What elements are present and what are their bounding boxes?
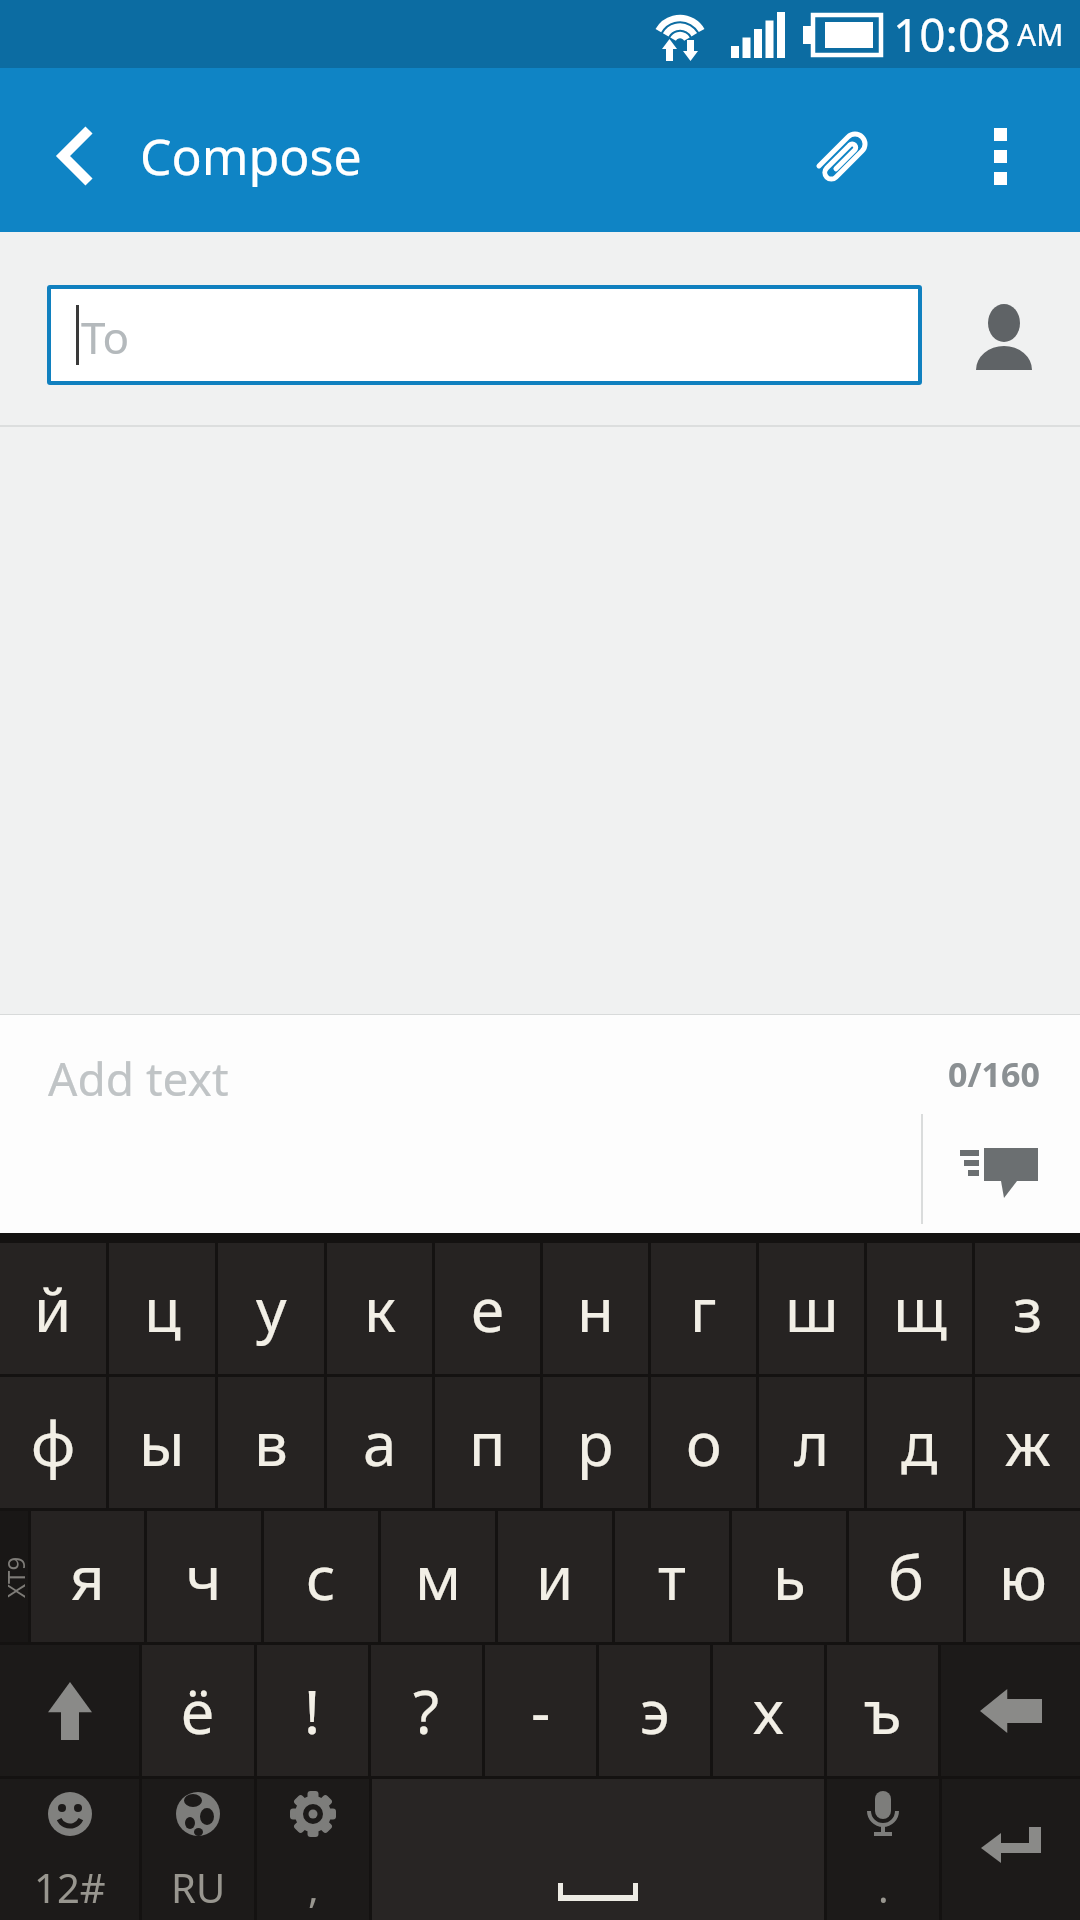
staticText: а: [363, 1402, 397, 1484]
staticText: п: [469, 1402, 506, 1484]
button[interactable]: р: [543, 1377, 648, 1508]
button[interactable]: To: [47, 285, 922, 385]
staticText: б: [888, 1536, 924, 1618]
button[interactable]: о: [651, 1377, 756, 1508]
staticText: To: [81, 307, 130, 367]
staticText: э: [640, 1670, 670, 1752]
staticText: н: [577, 1268, 614, 1350]
button[interactable]: [788, 101, 898, 211]
button[interactable]: ш: [759, 1243, 864, 1374]
button[interactable]: [960, 101, 1040, 211]
button[interactable]: э: [599, 1645, 710, 1776]
staticText: й: [34, 1268, 72, 1350]
button[interactable]: ю: [966, 1511, 1080, 1642]
staticText: ш: [785, 1268, 839, 1350]
button[interactable]: ъ: [827, 1645, 938, 1776]
staticText: г: [690, 1268, 717, 1350]
button[interactable]: у: [218, 1243, 324, 1374]
button[interactable]: а: [327, 1377, 432, 1508]
button[interactable]: 12#: [0, 1779, 139, 1920]
button[interactable]: ц: [109, 1243, 215, 1374]
button[interactable]: .: [827, 1779, 939, 1920]
staticText: т: [658, 1536, 686, 1618]
button[interactable]: т: [615, 1511, 729, 1642]
button[interactable]: ы: [109, 1377, 215, 1508]
staticText: м: [415, 1536, 462, 1618]
staticText: в: [254, 1402, 288, 1484]
staticText: !: [304, 1670, 321, 1752]
staticText: о: [686, 1402, 722, 1484]
staticText: и: [536, 1536, 574, 1618]
button[interactable]: -: [485, 1645, 596, 1776]
staticText: ц: [144, 1268, 181, 1350]
button[interactable]: ,: [257, 1779, 369, 1920]
staticText: з: [1013, 1268, 1043, 1350]
staticText: у: [256, 1268, 287, 1350]
staticText: Add text: [48, 1047, 229, 1110]
button[interactable]: з: [975, 1243, 1080, 1374]
button[interactable]: и: [498, 1511, 612, 1642]
button[interactable]: ё: [142, 1645, 254, 1776]
staticText: с: [306, 1536, 336, 1618]
staticText: д: [901, 1402, 938, 1484]
staticText: щ: [893, 1268, 947, 1350]
staticText: ъ: [864, 1670, 902, 1752]
staticText: ч: [186, 1536, 222, 1618]
button[interactable]: б: [849, 1511, 963, 1642]
button[interactable]: я: [31, 1511, 144, 1642]
button[interactable]: !: [257, 1645, 368, 1776]
staticText: RU: [171, 1860, 226, 1914]
button[interactable]: [30, 101, 120, 211]
button[interactable]: [942, 1779, 1080, 1920]
staticText: я: [70, 1536, 105, 1618]
button[interactable]: [941, 1645, 1080, 1776]
staticText: ё: [181, 1670, 215, 1752]
button[interactable]: ч: [147, 1511, 261, 1642]
button[interactable]: ь: [732, 1511, 846, 1642]
button[interactable]: ?: [371, 1645, 482, 1776]
staticText: ю: [999, 1536, 1047, 1618]
button[interactable]: RU: [142, 1779, 254, 1920]
staticText: ?: [413, 1670, 440, 1752]
staticText: л: [794, 1402, 830, 1484]
button[interactable]: [372, 1779, 824, 1920]
button[interactable]: ф: [0, 1377, 106, 1508]
staticText: ж: [1005, 1402, 1051, 1484]
staticText: к: [364, 1268, 396, 1350]
button[interactable]: ж: [975, 1377, 1080, 1508]
button[interactable]: й: [0, 1243, 106, 1374]
button[interactable]: к: [327, 1243, 432, 1374]
button[interactable]: с: [264, 1511, 378, 1642]
staticText: .: [878, 1860, 889, 1914]
staticText: XT9: [0, 1556, 29, 1598]
staticText: х: [753, 1670, 784, 1752]
button[interactable]: д: [867, 1377, 972, 1508]
staticText: 10:08: [893, 3, 1011, 66]
button[interactable]: [935, 1124, 1065, 1224]
staticText: AM: [1017, 14, 1064, 55]
staticText: 0/160: [948, 1051, 1040, 1097]
staticText: ,: [308, 1860, 319, 1914]
button[interactable]: п: [435, 1377, 540, 1508]
staticText: ы: [139, 1402, 185, 1484]
button[interactable]: л: [759, 1377, 864, 1508]
staticText: -: [531, 1670, 551, 1752]
button[interactable]: [0, 1645, 139, 1776]
staticText: е: [471, 1268, 505, 1350]
button[interactable]: г: [651, 1243, 756, 1374]
button[interactable]: в: [218, 1377, 324, 1508]
button[interactable]: щ: [867, 1243, 972, 1374]
button[interactable]: [960, 297, 1048, 377]
staticText: Compose: [140, 122, 362, 190]
staticText: ф: [31, 1402, 76, 1484]
button[interactable]: н: [543, 1243, 648, 1374]
button[interactable]: х: [713, 1645, 824, 1776]
staticText: ь: [773, 1536, 806, 1618]
button[interactable]: е: [435, 1243, 540, 1374]
staticText: 12#: [34, 1860, 106, 1914]
button[interactable]: м: [381, 1511, 495, 1642]
staticText: р: [577, 1402, 614, 1484]
